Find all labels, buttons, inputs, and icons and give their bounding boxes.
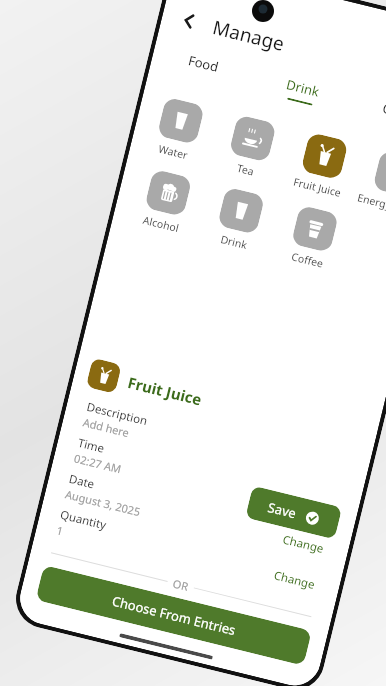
button[interactable]: Coffee (270, 201, 356, 276)
staticText: 1 (55, 522, 65, 538)
staticText: Description (85, 399, 149, 429)
button[interactable]: Fruit Juice (279, 128, 365, 203)
staticText: Fruit Juice (126, 372, 204, 410)
staticText: Fruit Juice (292, 175, 343, 200)
button[interactable]: Drink (249, 67, 355, 115)
staticText: Food (186, 51, 221, 76)
button[interactable]: Others (350, 91, 386, 137)
staticText: Others (381, 99, 386, 126)
staticText: Quantity (59, 507, 108, 533)
staticText: OR (166, 574, 196, 595)
button[interactable]: Drink (196, 182, 282, 257)
staticText: Manage (210, 14, 287, 57)
staticText: Drink (284, 75, 322, 101)
button[interactable]: Choose (286, 491, 339, 526)
staticText: Choose From Entries (110, 592, 238, 639)
button[interactable]: Food (150, 43, 255, 88)
staticText: August 3, 2025 (64, 486, 142, 519)
staticText: 02:27 AM (73, 450, 123, 476)
staticText: Time (76, 435, 106, 457)
staticText: Tea (236, 161, 255, 178)
button[interactable]: Water (136, 93, 221, 167)
staticText: Date (67, 471, 96, 492)
button[interactable]: Save (245, 485, 342, 539)
staticText: Change (281, 531, 326, 557)
button[interactable]: Back (168, 0, 209, 41)
staticText: Drink (219, 232, 249, 252)
button[interactable]: Change (267, 563, 322, 598)
staticText: Add here (81, 414, 131, 440)
staticText: Alcohol (141, 213, 181, 235)
staticText: Energy Drink (356, 190, 386, 219)
button[interactable]: Energy Drink (351, 145, 386, 220)
staticText: Water (157, 141, 189, 162)
staticText: Change (272, 567, 317, 593)
staticText: Coffee (290, 249, 325, 271)
button[interactable]: Tea (207, 110, 293, 185)
staticText: Save (266, 498, 299, 522)
button[interactable]: Alcohol (123, 165, 209, 239)
button[interactable]: Change (276, 527, 330, 562)
button[interactable]: Choose From Entries (35, 565, 312, 666)
staticText: Choose (291, 496, 334, 521)
